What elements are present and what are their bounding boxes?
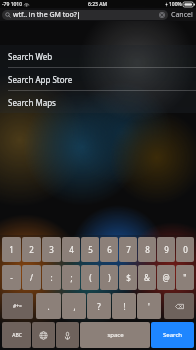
staticText: - xyxy=(10,272,13,283)
staticText: 100% xyxy=(169,1,182,8)
staticText: wtf.. in the GM too? xyxy=(13,10,77,20)
button[interactable]: ; xyxy=(62,265,80,290)
staticText: 0 xyxy=(183,244,188,255)
button[interactable]: 1 xyxy=(2,237,21,262)
staticText: 2 xyxy=(29,244,34,255)
staticText: 3 xyxy=(49,244,54,255)
button[interactable]: & xyxy=(138,265,156,290)
button[interactable]: 4 xyxy=(62,237,80,262)
button[interactable]: . xyxy=(36,293,61,319)
staticText: space xyxy=(107,331,124,339)
button[interactable]: $ xyxy=(119,265,137,290)
button[interactable]: , xyxy=(62,293,86,319)
staticText: . xyxy=(47,301,50,312)
staticText: @ xyxy=(162,272,170,283)
staticText: 7 xyxy=(126,244,131,255)
staticText: " xyxy=(183,272,187,283)
button[interactable]: Cancel xyxy=(170,10,194,20)
button[interactable]: space xyxy=(80,322,150,348)
staticText: , xyxy=(73,301,76,312)
button[interactable]: ! xyxy=(112,293,136,319)
staticText: 6 xyxy=(107,244,112,255)
button[interactable]: ' xyxy=(137,293,161,319)
staticText: ' xyxy=(148,301,150,312)
button[interactable]: Search Maps xyxy=(0,91,196,113)
staticText: -79 1010 xyxy=(2,1,23,8)
staticText: ? xyxy=(97,301,101,312)
button[interactable]: 5 xyxy=(81,237,99,262)
button[interactable]: Dictate xyxy=(56,322,79,348)
button[interactable]: Search Web xyxy=(0,45,196,67)
button[interactable]: : xyxy=(42,265,61,290)
staticText: $ xyxy=(126,272,131,283)
button[interactable]: / xyxy=(22,265,41,290)
staticText: ) xyxy=(108,272,111,283)
staticText: ( xyxy=(89,272,92,283)
staticText: 4 xyxy=(69,244,74,255)
button[interactable]: ) xyxy=(100,265,118,290)
staticText: Search App Store xyxy=(8,74,73,85)
staticText: & xyxy=(144,272,150,283)
button[interactable]: #+= xyxy=(2,293,33,319)
button[interactable]: 7 xyxy=(119,237,137,262)
button[interactable]: Search xyxy=(151,322,194,348)
staticText: ! xyxy=(123,301,126,312)
button[interactable]: wtf.. in the GM too? xyxy=(2,10,168,20)
staticText: Cancel xyxy=(171,10,193,20)
button[interactable]: Search App Store xyxy=(0,68,196,90)
button[interactable]: ( xyxy=(81,265,99,290)
staticText: ; xyxy=(70,272,73,283)
button[interactable]: Backspace xyxy=(164,293,194,319)
button[interactable]: " xyxy=(176,265,194,290)
button[interactable]: 8 xyxy=(138,237,156,262)
staticText: : xyxy=(50,272,53,283)
button[interactable]: @ xyxy=(157,265,175,290)
button[interactable]: ? xyxy=(87,293,111,319)
button[interactable]: Clear text xyxy=(159,12,165,18)
button[interactable]: 6 xyxy=(100,237,118,262)
button[interactable]: 9 xyxy=(157,237,175,262)
button[interactable]: 3 xyxy=(42,237,61,262)
staticText: 6:23 AM xyxy=(88,1,108,8)
staticText: Search Maps xyxy=(8,97,56,108)
button[interactable]: - xyxy=(2,265,21,290)
staticText: 5 xyxy=(88,244,93,255)
staticText: 1 xyxy=(9,244,14,255)
staticText: 9 xyxy=(164,244,169,255)
staticText: / xyxy=(30,272,33,283)
button[interactable]: Change keyboard xyxy=(32,322,55,348)
staticText: Search Web xyxy=(8,51,53,62)
button[interactable]: 0 xyxy=(176,237,194,262)
staticText: Search xyxy=(163,331,182,339)
button[interactable]: ABC xyxy=(2,322,31,348)
staticText: #+= xyxy=(13,303,22,310)
button[interactable]: 2 xyxy=(22,237,41,262)
staticText: ABC xyxy=(12,332,22,339)
staticText: 8 xyxy=(145,244,150,255)
